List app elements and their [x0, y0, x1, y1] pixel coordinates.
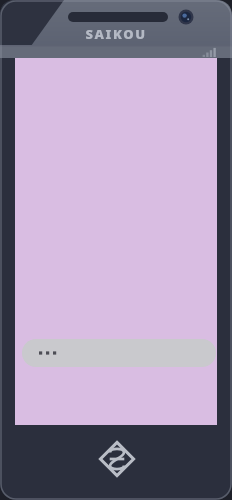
button[interactable]: Search field [15, 58, 217, 425]
button[interactable]: Home [99, 441, 135, 477]
staticText: SAIKOU [85, 25, 147, 43]
button[interactable]: Search field [22, 339, 216, 367]
